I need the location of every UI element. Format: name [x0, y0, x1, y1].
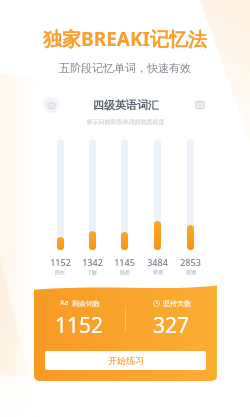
staticText: 独家BREAKI记忆法	[43, 26, 207, 52]
button[interactable]: Word book	[192, 97, 208, 113]
staticText: 3484	[147, 256, 168, 268]
staticText: 1145	[114, 256, 135, 268]
staticText: 1342	[82, 256, 103, 268]
staticText: 2853	[180, 256, 201, 268]
staticText: 了解	[87, 269, 97, 275]
staticText: 陌生	[55, 269, 65, 275]
staticText: 坚持天数	[163, 299, 191, 308]
button[interactable]: 开始练习	[45, 351, 206, 370]
button[interactable]: Robot assistant	[43, 97, 59, 113]
staticText: 1152	[50, 256, 71, 268]
staticText: 四级英语词汇	[93, 98, 159, 112]
staticText: 熟悉	[120, 269, 130, 275]
staticText: Aa	[60, 298, 69, 308]
staticText: 掌握	[153, 269, 163, 275]
staticText: 327	[153, 311, 190, 340]
staticText: 开始练习	[108, 355, 144, 366]
staticText: 展示目前阶段单词的熟悉程度	[34, 118, 217, 126]
staticText: 1152	[55, 311, 104, 340]
staticText: 剩余词数	[72, 299, 100, 308]
staticText: 五阶段记忆单词，快速有效	[59, 61, 191, 75]
staticText: 精通	[186, 269, 196, 275]
